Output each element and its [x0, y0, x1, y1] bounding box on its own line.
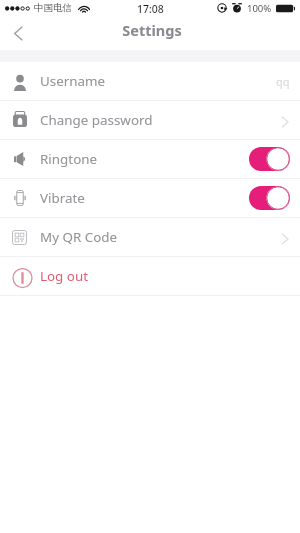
staticText: Settings: [122, 20, 182, 40]
staticText: 17:08: [137, 2, 164, 16]
button[interactable]: Log out: [0, 257, 300, 295]
staticText: qq: [276, 74, 290, 89]
staticText: Vibrate: [40, 189, 85, 207]
button[interactable]: Vibrate: [0, 179, 300, 217]
staticText: My QR Code: [40, 228, 118, 246]
button[interactable]: Back: [0, 19, 35, 50]
button[interactable]: Change password: [0, 101, 300, 139]
staticText: Username: [40, 72, 106, 90]
staticText: Ringtone: [40, 150, 98, 168]
button[interactable]: Ringtone: [0, 140, 300, 178]
button[interactable]: Toggle: [249, 186, 290, 210]
button[interactable]: Toggle: [249, 147, 290, 171]
button[interactable]: Username: [0, 62, 300, 100]
staticText: 中国电信: [34, 2, 72, 14]
button[interactable]: My QR Code: [0, 218, 300, 256]
staticText: Log out: [40, 267, 89, 285]
staticText: 100%: [247, 2, 272, 15]
staticText: Change password: [40, 111, 153, 129]
